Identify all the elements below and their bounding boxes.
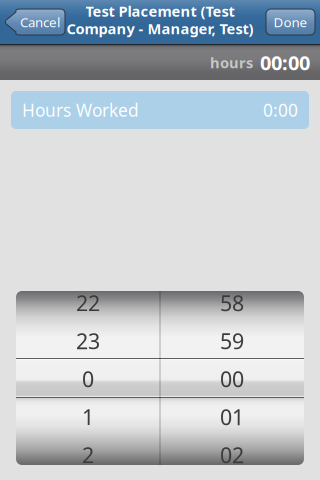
button[interactable]: Cancel <box>5 9 65 35</box>
button[interactable]: Done <box>266 9 315 35</box>
staticText: 23 <box>76 327 100 355</box>
staticText: 0:00 <box>263 98 298 121</box>
staticText: Hours Worked <box>22 98 139 121</box>
staticText: 1 <box>82 403 94 431</box>
staticText: 2 <box>82 441 94 469</box>
staticText: 58 <box>220 289 244 317</box>
staticText: 22 <box>76 289 100 317</box>
staticText: hours <box>210 53 253 72</box>
staticText: Company - Manager, Test) <box>66 19 253 38</box>
button[interactable]: Hours Worked <box>11 91 309 129</box>
staticText: 59 <box>220 327 244 355</box>
staticText: Test Placement (Test <box>85 1 234 21</box>
staticText: 0 <box>82 365 94 393</box>
staticText: 02 <box>220 441 244 469</box>
staticText: Done <box>273 13 307 31</box>
staticText: 00:00 <box>260 49 310 76</box>
staticText: Cancel <box>20 13 60 31</box>
staticText: 01 <box>220 403 244 431</box>
staticText: 00 <box>220 365 244 393</box>
